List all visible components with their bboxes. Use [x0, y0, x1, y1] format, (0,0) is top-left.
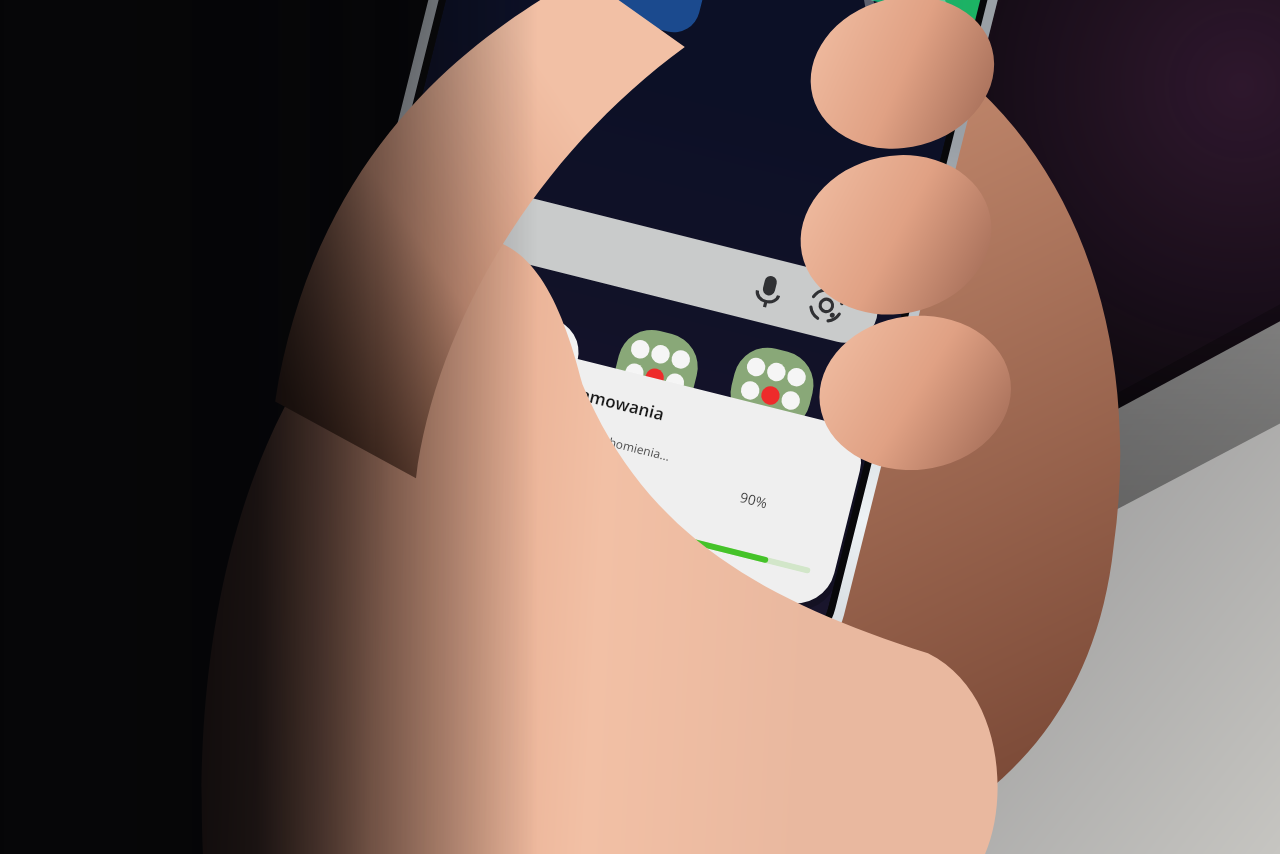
button[interactable]: Software update progress 90 percent: [0, 0, 1280, 854]
